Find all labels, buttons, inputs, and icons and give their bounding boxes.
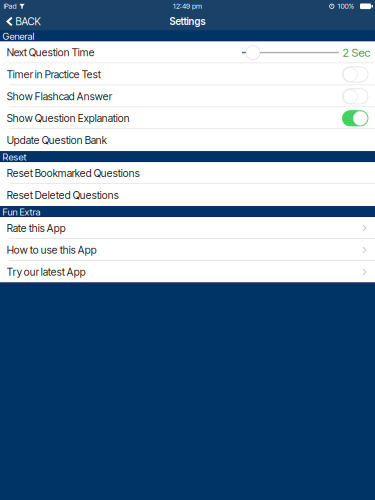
- button[interactable]: Show Question Explanation, on: [342, 111, 368, 126]
- button[interactable]: Try our latest App: [0, 261, 375, 283]
- button[interactable]: How to use this App: [0, 239, 375, 261]
- button[interactable]: Next question time, 2 seconds: [242, 45, 339, 59]
- staticText: 12:49 pm: [173, 2, 202, 11]
- staticText: Rate this App: [7, 222, 66, 234]
- staticText: Try our latest App: [7, 266, 86, 278]
- staticText: 100%: [337, 2, 354, 11]
- button[interactable]: BACK: [0, 13, 44, 30]
- staticText: Show Question Explanation: [7, 112, 130, 125]
- staticText: Reset: [3, 151, 27, 163]
- staticText: How to use this App: [7, 244, 97, 256]
- button[interactable]: Rate this App: [0, 217, 375, 239]
- staticText: Next Question Time: [7, 46, 95, 59]
- staticText: Reset Bookmarked Questions: [7, 167, 140, 179]
- staticText: Fun Extra: [3, 206, 41, 218]
- button[interactable]: Reset Bookmarked Questions: [0, 162, 375, 184]
- staticText: Reset Deleted Questions: [7, 189, 119, 201]
- staticText: BACK: [15, 15, 40, 28]
- staticText: Update Question Bank: [7, 134, 107, 146]
- button[interactable]: Reset Deleted Questions: [0, 184, 375, 206]
- staticText: Timer in Practice Test: [7, 68, 101, 81]
- button[interactable]: Timer in Practice Test, off: [342, 67, 368, 82]
- staticText: iPad: [3, 2, 16, 11]
- button[interactable]: Update Question Bank: [0, 129, 375, 151]
- staticText: Show Flashcad Answer: [7, 90, 112, 103]
- staticText: Settings: [169, 15, 205, 27]
- staticText: General: [3, 30, 35, 42]
- staticText: 2 Sec: [342, 46, 370, 59]
- button[interactable]: Show Flashcad Answer, off: [342, 89, 368, 104]
